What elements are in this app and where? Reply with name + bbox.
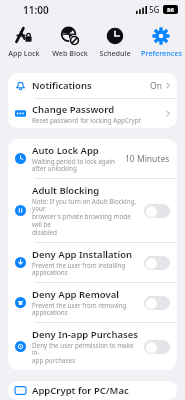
button[interactable]: Deny In-app Purchases (144, 340, 170, 354)
button[interactable]: Web Block (48, 19, 92, 65)
button[interactable]: Auto Lock App (8, 139, 177, 178)
button[interactable]: Schedule (93, 19, 137, 65)
button[interactable]: Preferences (139, 19, 183, 65)
staticText: 11:00 (23, 3, 49, 17)
button[interactable]: Deny App Installation (8, 243, 177, 282)
button[interactable]: Deny App Removal (144, 296, 170, 310)
button[interactable]: Change Password (8, 99, 177, 128)
staticText: Reset password for locking AppCrypt (32, 116, 141, 125)
staticText: Deny App Installation (32, 248, 133, 261)
staticText: Deny the user permission to make in- app… (32, 341, 140, 365)
button[interactable]: Adult Blocking (8, 179, 177, 242)
staticText: Deny In-app Purchases (32, 328, 138, 341)
staticText: Schedule (99, 48, 131, 58)
staticText: Auto Lock App (32, 144, 99, 157)
button[interactable]: App Lock (2, 19, 46, 65)
staticText: Prevent the user from removing applicati… (32, 301, 127, 317)
button[interactable]: Notifications (8, 73, 177, 98)
staticText: Waiting period to lock again after unloc… (32, 157, 115, 173)
staticText: 86 (167, 6, 174, 14)
staticText: 10 Minutes (125, 153, 170, 165)
staticText: 5G (149, 4, 160, 15)
staticText: Adult Blocking (32, 184, 100, 197)
staticText: AppCrypt for PC/Mac (32, 384, 129, 397)
staticText: Prevent the user from installing applica… (32, 261, 126, 277)
button[interactable]: AppCrypt for PC/Mac (8, 381, 177, 400)
staticText: On (150, 80, 162, 92)
button[interactable]: Deny App Removal (8, 283, 177, 322)
staticText: Deny App Removal (32, 288, 119, 301)
staticText: Preferences (141, 48, 182, 58)
button[interactable]: Adult Blocking (144, 204, 170, 218)
button[interactable]: Deny App Installation (144, 256, 170, 270)
staticText: Web Block (52, 48, 88, 58)
button[interactable]: Deny In-app Purchases (8, 323, 177, 370)
staticText: Notifications (32, 79, 92, 92)
staticText: Change Password (32, 103, 115, 116)
staticText: Note: If you turn on Adult Blocking, you… (32, 197, 140, 237)
staticText: App Lock (8, 48, 40, 58)
